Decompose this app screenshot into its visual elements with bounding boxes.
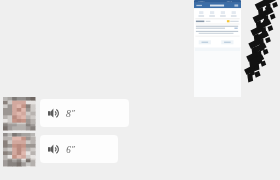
staticText: 8″	[66, 107, 75, 119]
staticText: 6″	[66, 143, 75, 155]
button[interactable]: Handwritten overlay image	[240, 0, 272, 76]
button[interactable]: Contact avatar	[3, 97, 35, 130]
button[interactable]: Play voice message 6″	[40, 135, 118, 163]
button[interactable]: Play voice message 8″	[40, 99, 129, 127]
button[interactable]: Contact avatar	[3, 133, 35, 166]
button[interactable]: Shared screenshot image	[194, 0, 241, 97]
